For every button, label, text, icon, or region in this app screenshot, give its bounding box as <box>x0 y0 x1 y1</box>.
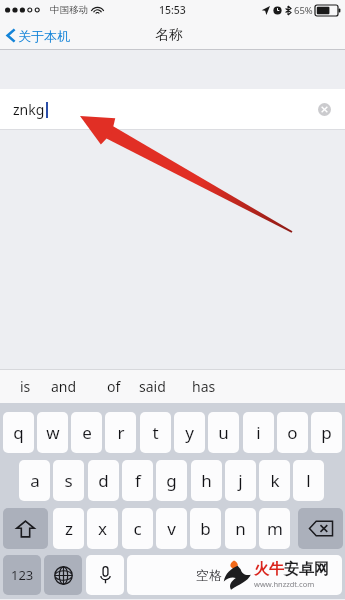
button[interactable]: w <box>37 412 68 453</box>
button[interactable]: 关于本机 <box>0 23 78 48</box>
staticText: www.hnzzdt.com <box>254 579 315 589</box>
button[interactable]: a <box>19 460 50 501</box>
button[interactable]: Numbers <box>3 555 41 595</box>
button[interactable]: z <box>53 508 84 549</box>
button[interactable]: j <box>225 460 256 501</box>
button[interactable]: Clear text <box>318 103 331 116</box>
button[interactable]: r <box>105 412 136 453</box>
button[interactable]: x <box>87 508 118 549</box>
button[interactable]: d <box>88 460 119 501</box>
button[interactable]: q <box>3 412 34 453</box>
staticText: p <box>321 421 332 444</box>
button[interactable]: is <box>14 372 37 401</box>
staticText: z <box>65 517 73 540</box>
button[interactable]: f <box>122 460 153 501</box>
button[interactable]: k <box>259 460 290 501</box>
button[interactable]: g <box>156 460 187 501</box>
staticText: 中国移动 <box>50 4 88 16</box>
staticText: c <box>133 517 142 540</box>
button[interactable]: u <box>208 412 239 453</box>
button[interactable]: said <box>133 372 172 401</box>
button[interactable]: e <box>71 412 102 453</box>
staticText: of <box>107 377 121 396</box>
staticText: 123 <box>11 566 34 584</box>
staticText: e <box>82 421 92 444</box>
button[interactable]: l <box>293 460 324 501</box>
button[interactable]: s <box>53 460 84 501</box>
button[interactable]: 空格 <box>127 555 342 595</box>
staticText: m <box>267 517 283 540</box>
staticText: said <box>139 377 166 396</box>
staticText: b <box>200 517 211 540</box>
button[interactable]: n <box>225 508 256 549</box>
staticText: is <box>20 377 31 396</box>
staticText: znkg <box>13 100 45 119</box>
staticText: x <box>98 517 107 540</box>
button[interactable]: m <box>259 508 290 549</box>
staticText: k <box>270 469 280 492</box>
button[interactable]: v <box>156 508 187 549</box>
staticText: 关于本机 <box>18 28 70 44</box>
staticText: h <box>201 469 212 492</box>
button[interactable]: y <box>174 412 205 453</box>
staticText: y <box>185 421 194 444</box>
button[interactable]: has <box>186 372 222 401</box>
button[interactable]: Shift <box>3 508 48 549</box>
button[interactable]: t <box>140 412 171 453</box>
staticText: g <box>166 469 177 492</box>
staticText: 空格 <box>196 567 222 583</box>
button[interactable]: Change keyboard <box>44 555 82 595</box>
button[interactable]: h <box>191 460 222 501</box>
button[interactable]: c <box>122 508 153 549</box>
staticText: has <box>192 377 216 396</box>
staticText: f <box>135 469 141 492</box>
staticText: r <box>117 421 125 444</box>
staticText: n <box>235 517 246 540</box>
staticText: 火牛 <box>254 560 284 579</box>
staticText: 15:53 <box>159 3 186 17</box>
button[interactable]: b <box>190 508 221 549</box>
button[interactable]: i <box>243 412 274 453</box>
staticText: w <box>46 421 60 444</box>
button[interactable]: and <box>45 372 83 401</box>
button[interactable]: of <box>101 372 127 401</box>
staticText: s <box>64 469 73 492</box>
staticText: 65% <box>294 4 313 17</box>
button[interactable]: o <box>277 412 308 453</box>
staticText: v <box>167 517 176 540</box>
staticText: 安卓网 <box>284 560 329 579</box>
button[interactable]: znkg <box>0 89 345 130</box>
staticText: 名称 <box>155 26 183 44</box>
staticText: o <box>287 421 298 444</box>
staticText: and <box>51 377 77 396</box>
staticText: j <box>238 469 243 492</box>
staticText: l <box>306 469 311 492</box>
staticText: a <box>30 469 40 492</box>
button[interactable]: Backspace <box>298 508 343 549</box>
button[interactable]: Dictation <box>86 555 124 595</box>
staticText: u <box>218 421 229 444</box>
staticText: t <box>152 421 159 444</box>
button[interactable]: p <box>311 412 342 453</box>
staticText: d <box>98 469 109 492</box>
staticText: q <box>13 421 24 444</box>
staticText: i <box>256 421 261 444</box>
